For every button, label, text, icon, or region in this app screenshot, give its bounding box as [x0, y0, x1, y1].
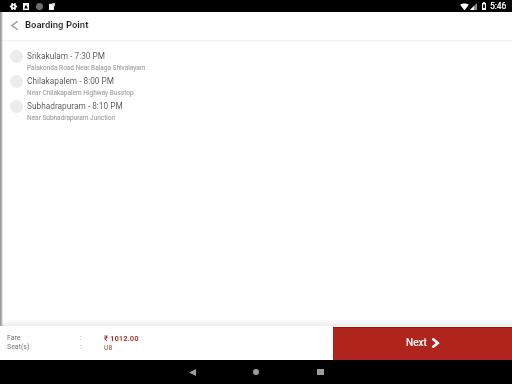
staticText: : [80, 343, 82, 351]
staticText: Near Subhadrapuram Junction [27, 114, 116, 122]
button[interactable]: Subhadrapuram - 8:10 PM [0, 99, 512, 124]
button[interactable]: Next [333, 327, 512, 360]
button[interactable]: Home [244, 360, 268, 384]
button[interactable]: Back [0, 12, 25, 37]
button[interactable]: Srikakulam - 7:30 PM [0, 49, 512, 74]
staticText: Near Chilakapalem Highway Busstop [27, 89, 134, 97]
staticText: Seat(s) [7, 343, 30, 351]
staticText: Chilakapalem - 8:00 PM [27, 76, 115, 86]
staticText: 5:46 [490, 1, 507, 11]
staticText: Next [406, 337, 427, 349]
staticText: Fare [7, 334, 21, 342]
staticText: U8 [104, 344, 113, 352]
staticText: ₹ 1012.00 [104, 334, 139, 343]
button[interactable]: Recent apps [308, 360, 332, 384]
button[interactable]: Chilakapalem - 8:00 PM [0, 74, 512, 99]
button[interactable]: Back [180, 360, 204, 384]
staticText: Boarding Point [25, 19, 89, 30]
staticText: Subhadrapuram - 8:10 PM [27, 101, 123, 111]
staticText: Palakonda Road Near Balaga Shivalayam [27, 64, 146, 72]
staticText: Srikakulam - 7:30 PM [27, 51, 106, 61]
staticText: : [80, 334, 82, 342]
